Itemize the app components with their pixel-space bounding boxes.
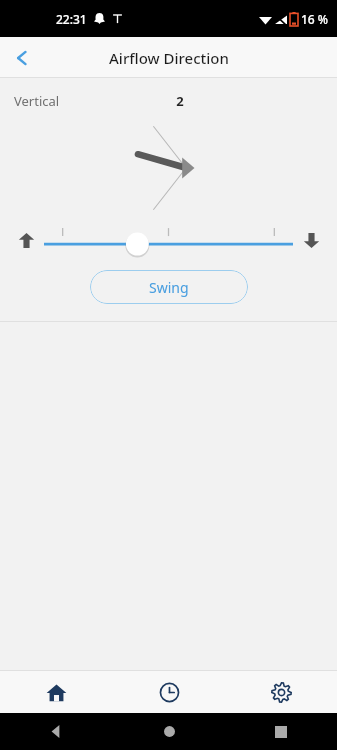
button[interactable]: Swing xyxy=(90,270,248,304)
button[interactable]: Schedule xyxy=(113,671,225,713)
button[interactable]: Recents xyxy=(225,713,337,750)
staticText: 2 xyxy=(162,92,198,110)
staticText: 16 % xyxy=(301,11,329,27)
staticText: Airflow Direction xyxy=(109,48,229,68)
staticText: Vertical xyxy=(14,92,60,110)
button[interactable] xyxy=(44,223,293,257)
button[interactable]: Airflow up xyxy=(14,228,38,252)
button[interactable]: Back xyxy=(0,37,44,78)
button[interactable]: Settings xyxy=(225,671,337,713)
button[interactable]: Home xyxy=(113,713,225,750)
staticText: Swing xyxy=(149,278,189,297)
button[interactable]: Airflow down xyxy=(299,228,323,252)
staticText: 22:31 xyxy=(56,11,87,27)
button[interactable]: Home xyxy=(0,671,113,713)
button[interactable]: Back xyxy=(0,713,113,750)
